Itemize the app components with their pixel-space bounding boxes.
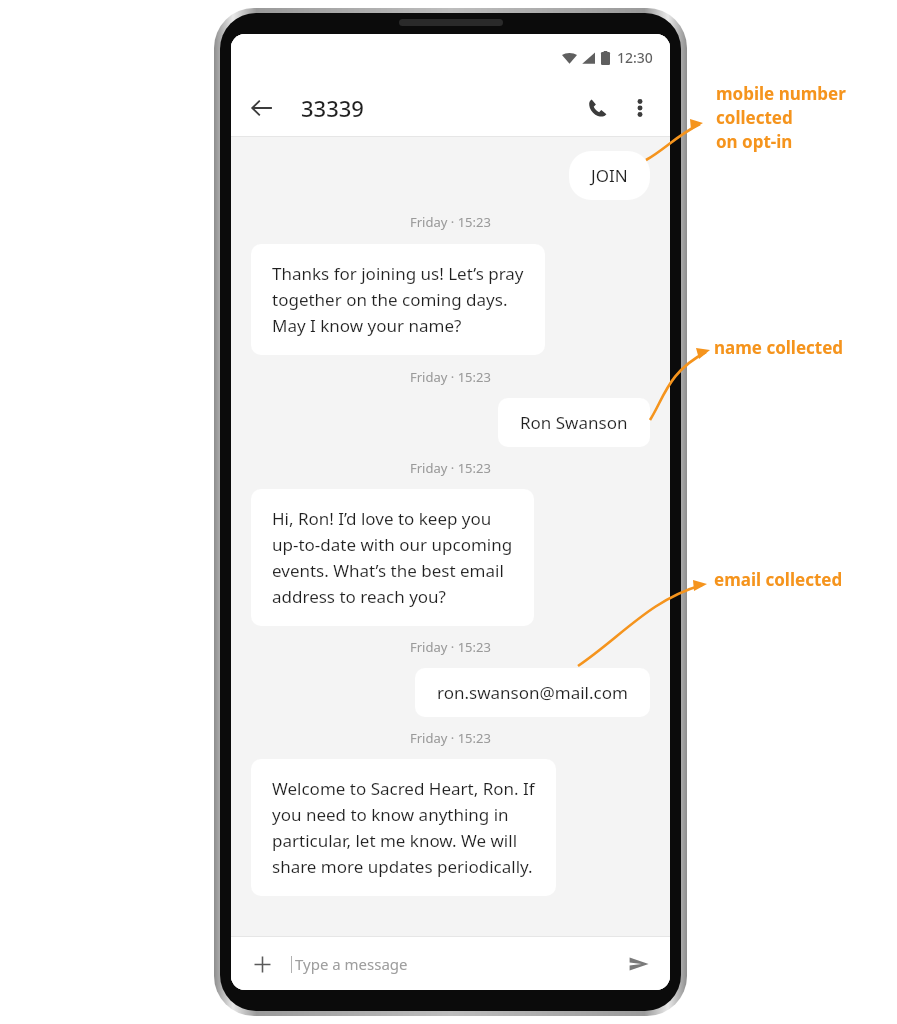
staticText: Ron Swanson [520, 411, 628, 434]
button[interactable]: Back [247, 93, 277, 123]
button[interactable]: Type a message [291, 954, 624, 974]
button[interactable]: Attach [247, 949, 277, 979]
staticText: ron.swanson@mail.com [437, 681, 628, 704]
staticText: Type a message [295, 954, 408, 974]
button[interactable]: More options [626, 94, 654, 122]
button[interactable]: Ron Swanson [498, 398, 650, 447]
staticText: JOIN [591, 164, 628, 187]
staticText: Hi, Ron! I’d love to keep you up-to-date… [272, 507, 513, 608]
staticText: Friday · 15:23 [410, 459, 491, 477]
button[interactable]: Send [624, 949, 654, 979]
button[interactable]: Hi, Ron! I’d love to keep you up-to-date… [251, 489, 534, 626]
staticText: mobile number collected on opt-in [716, 82, 846, 153]
button[interactable]: Call [582, 93, 612, 123]
staticText: 12:30 [617, 48, 653, 67]
staticText: name collected [714, 336, 844, 359]
button[interactable]: ron.swanson@mail.com [415, 668, 650, 717]
staticText: Thanks for joining us! Let’s pray togeth… [272, 262, 524, 337]
staticText: Friday · 15:23 [410, 729, 491, 747]
staticText: Welcome to Sacred Heart, Ron. If you nee… [272, 777, 535, 878]
staticText: 33339 [301, 93, 364, 123]
staticText: Friday · 15:23 [410, 213, 491, 231]
button[interactable]: Thanks for joining us! Let’s pray togeth… [251, 244, 545, 355]
button[interactable]: JOIN [569, 151, 650, 200]
staticText: Friday · 15:23 [410, 368, 491, 386]
staticText: Friday · 15:23 [410, 638, 491, 656]
staticText: email collected [714, 568, 843, 591]
button[interactable]: Welcome to Sacred Heart, Ron. If you nee… [251, 759, 556, 896]
